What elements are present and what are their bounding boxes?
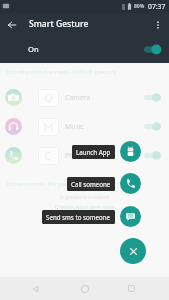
staticText: Send sms to someone: [46, 213, 111, 221]
staticText: Standby/active screen · Default gesture: [6, 68, 117, 76]
staticText: 80%: [134, 3, 145, 10]
staticText: Active screen · My gesture: [6, 180, 80, 188]
button[interactable]: On: [0, 37, 169, 63]
button[interactable]: Back: [29, 282, 42, 295]
staticText: Music: [65, 122, 85, 132]
button[interactable]: Back: [1, 14, 23, 36]
button[interactable]: Camera: [0, 84, 169, 111]
staticText: Launch App: [76, 148, 111, 156]
staticText: Phone: [65, 151, 87, 161]
staticText: Smart Gesture: [29, 18, 89, 30]
button[interactable]: More options: [147, 14, 169, 36]
staticText: Create your own now: [55, 203, 115, 211]
button[interactable]: Music: [0, 113, 169, 140]
staticText: 07:37: [148, 2, 166, 11]
button[interactable]: Launch App: [0, 141, 169, 162]
button[interactable]: Close menu: [120, 238, 146, 264]
staticText: Call someone: [71, 180, 111, 188]
staticText: 0 gesture created: [60, 193, 110, 201]
staticText: On: [28, 44, 39, 54]
button[interactable]: Phone: [0, 142, 169, 169]
staticText: Camera: [65, 93, 91, 103]
button[interactable]: Recents: [125, 282, 138, 295]
button[interactable]: Send sms to someone: [0, 206, 169, 227]
button[interactable]: Home: [78, 282, 91, 295]
button[interactable]: Call someone: [0, 173, 169, 194]
